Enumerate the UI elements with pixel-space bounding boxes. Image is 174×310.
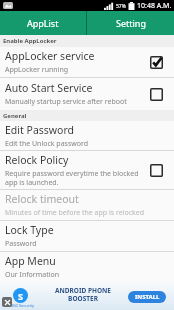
staticText: 57% bbox=[116, 3, 126, 10]
button[interactable]: Setting bbox=[87, 11, 174, 35]
staticText: Require password everytime the blocked a… bbox=[5, 169, 139, 187]
staticText: Our Information bbox=[5, 270, 60, 280]
staticText: Lock Type bbox=[5, 223, 54, 237]
staticText: 360 Security bbox=[11, 303, 34, 308]
button[interactable] bbox=[2, 297, 12, 307]
staticText: AppList bbox=[27, 17, 59, 29]
staticText: ANDROID PHONE BOOSTER bbox=[40, 286, 126, 303]
staticText: App Menu bbox=[5, 254, 56, 268]
staticText: Enable AppLocker bbox=[3, 37, 57, 45]
staticText: Relock Policy bbox=[5, 153, 69, 167]
staticText: Minutes of time before the app is relock… bbox=[5, 208, 145, 218]
button[interactable]: App Menu bbox=[0, 252, 174, 281]
staticText: S bbox=[18, 290, 23, 302]
staticText: Password bbox=[5, 239, 37, 249]
staticText: Edit Password bbox=[5, 123, 75, 137]
button[interactable]: Edit Password bbox=[0, 121, 174, 150]
button[interactable]: Relock timeout bbox=[0, 190, 174, 220]
button[interactable]: Auto Start Service bbox=[0, 78, 174, 110]
staticText: AppLocker running bbox=[5, 65, 69, 75]
button[interactable]: AppList bbox=[0, 11, 86, 35]
staticText: AppLocker service bbox=[5, 49, 95, 63]
staticText: Auto Start Service bbox=[5, 81, 93, 95]
staticText: Relock timeout bbox=[5, 192, 79, 206]
button[interactable]: AppLocker service bbox=[0, 47, 174, 77]
button[interactable]: INSTALL bbox=[128, 291, 166, 303]
button[interactable]: Lock Type bbox=[0, 221, 174, 251]
staticText: INSTALL bbox=[135, 293, 160, 301]
staticText: General bbox=[3, 112, 27, 120]
button[interactable]: Relock Policy bbox=[0, 151, 174, 189]
staticText: 10:48 A.M. bbox=[137, 1, 172, 11]
staticText: Manually startup service after reboot bbox=[5, 97, 127, 107]
staticText: Edit the Unlock password bbox=[5, 139, 89, 149]
staticText: Setting bbox=[116, 17, 146, 29]
